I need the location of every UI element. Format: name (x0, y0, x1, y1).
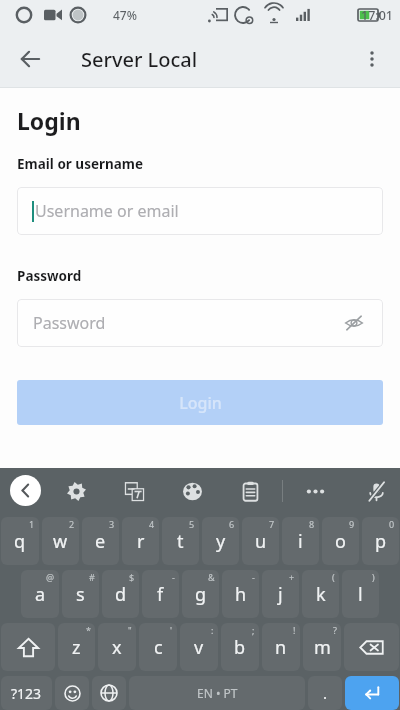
button[interactable]: Clipboard (236, 477, 264, 505)
button[interactable]: Back (8, 37, 52, 81)
staticText: Server Local (81, 46, 198, 73)
button[interactable]: More options (350, 37, 394, 81)
staticText: Password (17, 267, 82, 285)
staticText: h (235, 582, 247, 607)
staticText: x (112, 635, 122, 660)
button[interactable]: c (139, 623, 177, 671)
button[interactable]: Change language (92, 676, 126, 710)
staticText: 4 (149, 518, 155, 530)
staticText: p (375, 529, 387, 554)
button[interactable]: v (180, 623, 218, 671)
staticText: 7 (269, 518, 275, 530)
staticText: m (314, 635, 331, 660)
button[interactable]: b (221, 623, 259, 671)
button[interactable]: . (308, 676, 342, 710)
button[interactable]: Themes (178, 477, 206, 505)
button[interactable]: Settings (62, 477, 90, 505)
staticText: @ (46, 571, 55, 583)
button[interactable]: Translate (120, 477, 148, 505)
staticText: r (137, 529, 145, 554)
button[interactable]: o (322, 517, 359, 565)
button[interactable]: g (182, 570, 219, 618)
staticText: Email or username (17, 155, 144, 173)
button[interactable]: e (82, 517, 119, 565)
button[interactable]: Emoji (55, 676, 89, 710)
staticText: - (172, 571, 175, 583)
button[interactable]: j (262, 570, 299, 618)
button[interactable]: Password (17, 299, 383, 347)
staticText: 8 (309, 518, 315, 530)
button[interactable]: s (62, 570, 99, 618)
button[interactable]: t (162, 517, 199, 565)
staticText: i (298, 529, 303, 554)
staticText: ) (372, 571, 375, 583)
button[interactable]: Backspace (344, 623, 399, 671)
button[interactable]: Enter (345, 676, 399, 710)
staticText: v (194, 635, 204, 660)
staticText: : (211, 624, 214, 636)
button[interactable]: l (342, 570, 379, 618)
button[interactable]: Close keyboard (10, 475, 41, 506)
staticText: b (234, 635, 246, 660)
button[interactable]: EN • PT (129, 676, 305, 710)
staticText: w (53, 529, 68, 554)
button[interactable]: h (222, 570, 259, 618)
staticText: f (157, 582, 164, 607)
staticText: 3 (109, 518, 115, 530)
staticText: c (154, 635, 163, 660)
staticText: $ (129, 571, 135, 583)
staticText: Username or email (35, 200, 179, 222)
button[interactable]: z (58, 623, 95, 671)
staticText: k (316, 582, 326, 607)
button[interactable]: k (302, 570, 339, 618)
button[interactable]: Login (17, 380, 383, 425)
staticText: o (335, 529, 346, 554)
staticText: g (195, 582, 207, 607)
staticText: 0 (389, 518, 395, 530)
staticText: . (323, 683, 328, 703)
button[interactable]: p (362, 517, 399, 565)
staticText: + (289, 571, 295, 583)
button[interactable]: x (98, 623, 136, 671)
staticText: * (86, 624, 91, 636)
staticText: 6 (229, 518, 235, 530)
staticText: t (177, 529, 184, 554)
staticText: ?123 (11, 684, 42, 703)
button[interactable]: More (301, 477, 329, 505)
button[interactable]: u (242, 517, 279, 565)
button[interactable]: w (42, 517, 79, 565)
button[interactable]: d (102, 570, 139, 618)
staticText: j (278, 582, 283, 607)
staticText: " (128, 624, 132, 636)
button[interactable]: a (21, 570, 59, 618)
staticText: a (35, 582, 46, 607)
staticText: 9 (349, 518, 355, 530)
button[interactable]: n (262, 623, 300, 671)
staticText: ? (333, 624, 337, 636)
staticText: z (72, 635, 81, 660)
button[interactable]: i (282, 517, 319, 565)
button[interactable]: Shift (1, 623, 55, 671)
staticText: EN • PT (197, 685, 238, 701)
staticText: l (358, 582, 363, 607)
staticText: 2 (69, 518, 75, 530)
staticText: 1 (29, 518, 35, 530)
button[interactable]: q (1, 517, 39, 565)
button[interactable]: r (122, 517, 159, 565)
staticText: n (275, 635, 287, 660)
button[interactable]: Voice input off (362, 477, 390, 505)
button[interactable]: y (202, 517, 239, 565)
button[interactable]: ?123 (1, 676, 52, 710)
button[interactable]: m (303, 623, 341, 671)
staticText: & (208, 571, 215, 583)
staticText: 17:01 (361, 7, 394, 24)
button[interactable]: f (142, 570, 179, 618)
staticText: - (252, 571, 255, 583)
staticText: Login (17, 105, 81, 136)
button[interactable]: Show password (341, 310, 367, 336)
staticText: d (115, 582, 127, 607)
staticText: ( (332, 571, 335, 583)
staticText: ! (293, 624, 296, 636)
staticText: Password (33, 312, 341, 334)
button[interactable]: Username or email (17, 187, 383, 235)
